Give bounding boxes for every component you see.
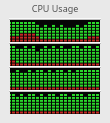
button[interactable]: CPU usage meters [0, 0, 110, 123]
staticText: CPU Usage [0, 2, 110, 14]
